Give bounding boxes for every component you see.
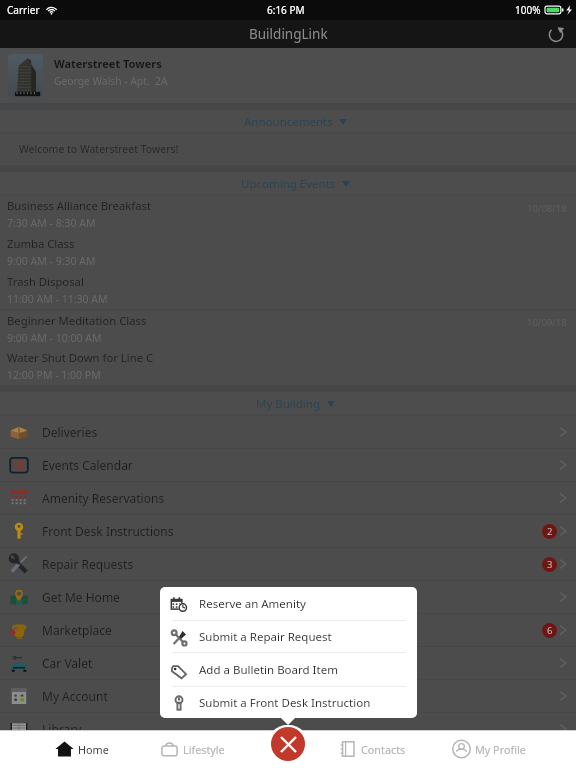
- staticText: Announcements: [244, 114, 333, 130]
- staticText: Zumba Class: [7, 236, 75, 251]
- staticText: Reserve an Amenity: [199, 596, 306, 612]
- staticText: Marketplace: [42, 622, 112, 638]
- staticText: 11:00 AM - 11:30 AM: [7, 292, 108, 306]
- staticText: 100%: [515, 3, 541, 17]
- staticText: 12:00 PM - 1:00 PM: [7, 368, 101, 382]
- staticText: Waterstreet Towers: [54, 56, 162, 71]
- button[interactable]: Home: [55, 730, 109, 768]
- button[interactable]: My Account: [0, 680, 576, 712]
- staticText: Beginner Meditation Class: [7, 313, 147, 328]
- staticText: 2: [547, 525, 553, 538]
- button[interactable]: Submit a Front Desk Instruction: [160, 687, 417, 718]
- staticText: Home: [78, 742, 109, 757]
- staticText: Deliveries: [42, 424, 98, 440]
- staticText: BuildingLink: [249, 25, 328, 43]
- staticText: My Building: [256, 396, 321, 412]
- staticText: 6: [547, 624, 553, 637]
- button[interactable]: Library: [0, 713, 576, 745]
- button[interactable]: Reserve an Amenity: [160, 587, 417, 620]
- staticText: Welcome to Waterstreet Towers!: [19, 142, 179, 156]
- button[interactable]: Refresh: [544, 22, 568, 46]
- staticText: Carrier: [7, 3, 40, 17]
- staticText: 9:00 AM - 9:30 AM: [7, 254, 96, 268]
- staticText: Events Calendar: [42, 457, 133, 473]
- staticText: Add a Bulletin Board Item: [199, 662, 338, 678]
- button[interactable]: Close menu: [271, 727, 305, 761]
- button[interactable]: Get Me Home: [0, 581, 576, 613]
- button[interactable]: Add a Bulletin Board Item: [160, 653, 417, 686]
- button[interactable]: Welcome to Waterstreet Towers!: [0, 133, 576, 165]
- staticText: My Profile: [475, 742, 526, 757]
- button[interactable]: Business Alliance Breakfast: [0, 195, 576, 233]
- staticText: Car Valet: [42, 655, 93, 671]
- button[interactable]: My Building: [0, 392, 576, 415]
- staticText: 6:16 PM: [267, 3, 305, 17]
- button[interactable]: Water Shut Down for Line C: [0, 347, 576, 385]
- staticText: George Walsh - Apt. 2A: [54, 74, 168, 88]
- staticText: 9:00 AM - 10:00 AM: [7, 331, 102, 345]
- staticText: Submit a Repair Request: [199, 629, 332, 645]
- staticText: 10/09/18: [527, 316, 567, 329]
- button[interactable]: Events Calendar: [0, 449, 576, 481]
- staticText: Amenity Reservations: [42, 490, 165, 506]
- button[interactable]: Repair Requests: [0, 548, 576, 580]
- staticText: Front Desk Instructions: [42, 523, 174, 539]
- button[interactable]: My Profile: [452, 730, 526, 768]
- staticText: Contacts: [361, 742, 406, 757]
- button[interactable]: Front Desk Instructions: [0, 515, 576, 547]
- staticText: Library: [42, 721, 82, 737]
- button[interactable]: Lifestyle: [160, 730, 225, 768]
- staticText: Business Alliance Breakfast: [7, 198, 152, 213]
- button[interactable]: Beginner Meditation Class: [0, 310, 576, 347]
- staticText: Lifestyle: [183, 742, 225, 757]
- staticText: 10/08/18: [527, 202, 567, 215]
- button[interactable]: Upcoming Events: [0, 172, 576, 195]
- button[interactable]: Submit a Repair Request: [160, 621, 417, 652]
- button[interactable]: Trash Disposal: [0, 271, 576, 309]
- staticText: Submit a Front Desk Instruction: [199, 695, 371, 711]
- button[interactable]: Deliveries: [0, 416, 576, 448]
- staticText: 7:30 AM - 8:30 AM: [7, 216, 96, 230]
- button[interactable]: Waterstreet Towers: [0, 48, 576, 103]
- button[interactable]: Car Valet: [0, 647, 576, 679]
- staticText: Upcoming Events: [241, 176, 336, 192]
- staticText: My Account: [42, 688, 108, 704]
- staticText: Trash Disposal: [7, 274, 84, 289]
- button[interactable]: Announcements: [0, 110, 576, 133]
- button[interactable]: Contacts: [338, 730, 406, 768]
- staticText: Repair Requests: [42, 556, 134, 572]
- button[interactable]: Marketplace: [0, 614, 576, 646]
- staticText: Water Shut Down for Line C: [7, 350, 154, 365]
- button[interactable]: Zumba Class: [0, 233, 576, 271]
- staticText: 3: [547, 558, 553, 571]
- button[interactable]: Amenity Reservations: [0, 482, 576, 514]
- staticText: Get Me Home: [42, 589, 120, 605]
